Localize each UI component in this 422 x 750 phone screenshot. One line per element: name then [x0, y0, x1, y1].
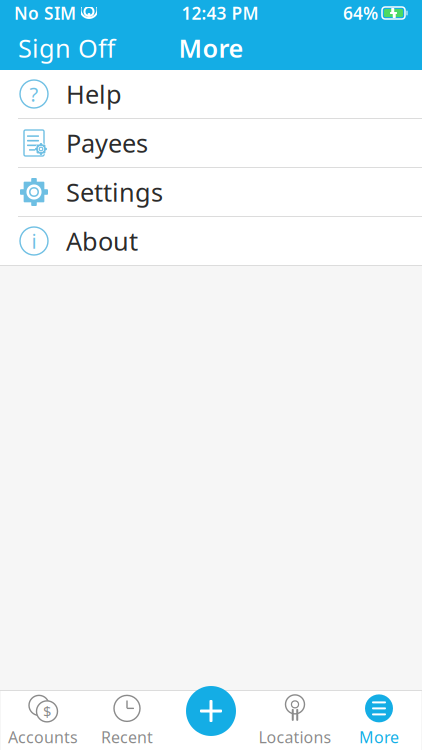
staticText: Help: [66, 77, 122, 111]
staticText: Sign Off: [18, 31, 115, 65]
staticText: More: [178, 31, 243, 65]
button[interactable]: Settings: [0, 168, 422, 217]
staticText: Recent: [101, 726, 153, 748]
staticText: ?: [29, 81, 38, 107]
button[interactable]: Add: [186, 686, 236, 736]
button[interactable]: $: [1, 692, 85, 748]
button[interactable]: Sign Off: [0, 26, 133, 70]
button[interactable]: Recent: [85, 692, 169, 748]
staticText: Payees: [66, 126, 148, 160]
staticText: Accounts: [8, 726, 78, 748]
staticText: i: [31, 228, 36, 254]
staticText: $: [43, 702, 51, 721]
staticText: Settings: [66, 175, 163, 209]
button[interactable]: Payees: [0, 119, 422, 168]
button[interactable]: Locations: [253, 692, 337, 748]
staticText: 12:43 PM: [181, 1, 258, 24]
button[interactable]: More: [337, 692, 421, 748]
button[interactable]: i: [0, 217, 422, 266]
staticText: 64%: [343, 1, 378, 24]
staticText: About: [66, 224, 138, 258]
button[interactable]: ?: [0, 70, 422, 119]
staticText: Locations: [258, 726, 331, 748]
staticText: More: [359, 726, 399, 748]
staticText: No SIM: [14, 1, 76, 24]
